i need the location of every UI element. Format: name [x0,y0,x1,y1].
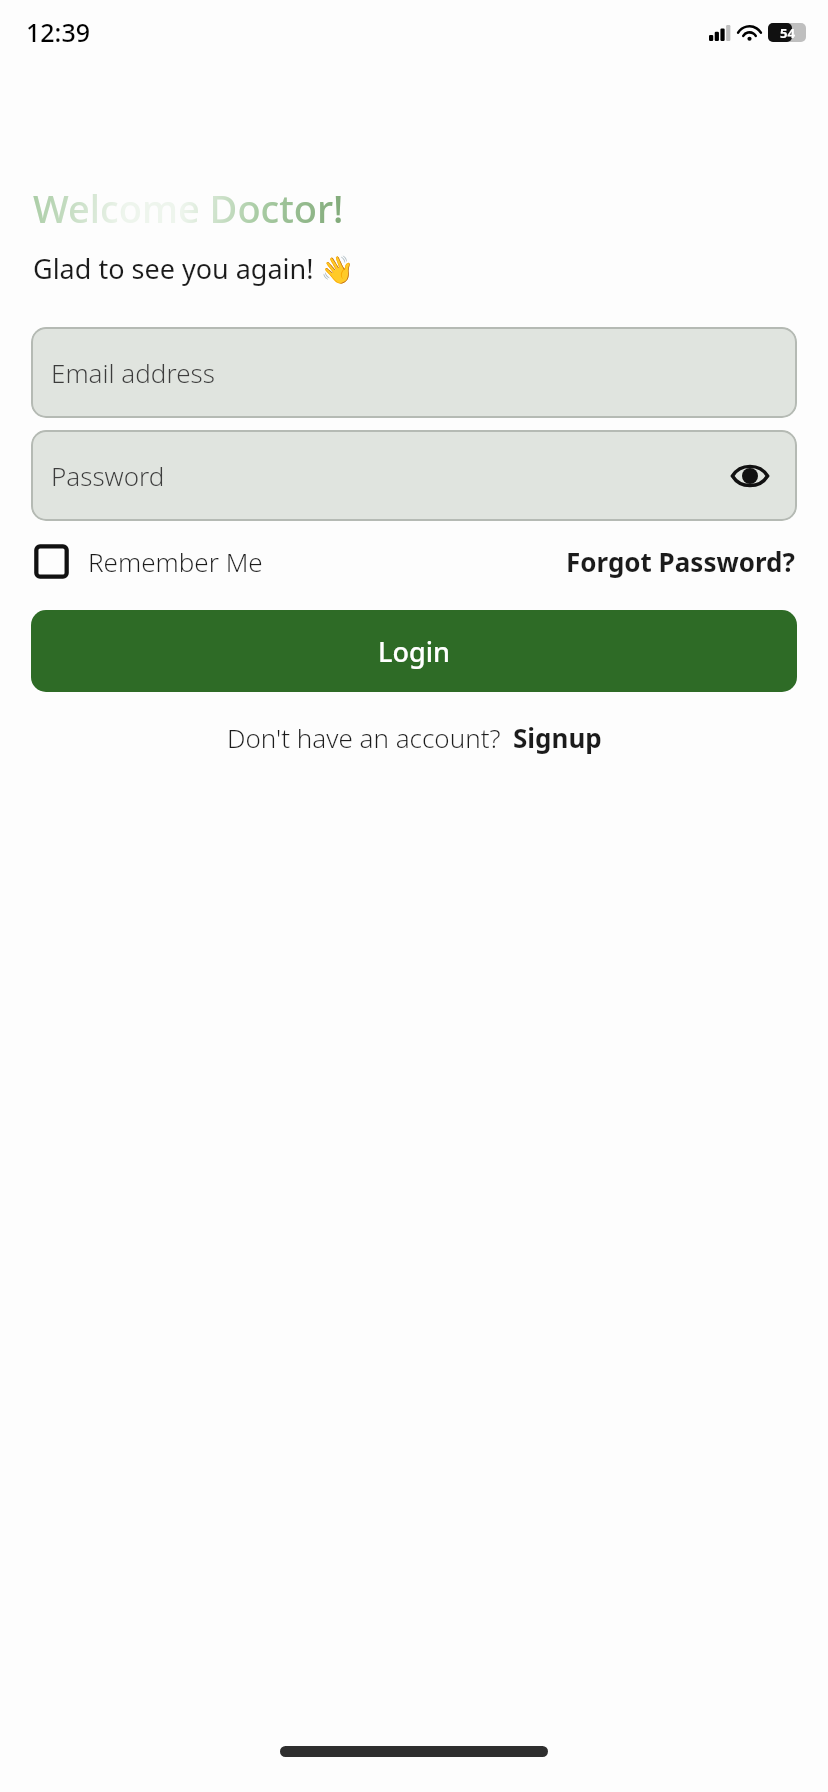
button[interactable]: Login [31,610,797,692]
button[interactable]: Forgot Password? [566,544,795,579]
staticText: Remember Me [88,544,263,579]
button[interactable]: Password [31,430,797,521]
staticText: Login [378,633,450,670]
staticText: Glad to see you again! 👋 [33,250,355,287]
staticText: 54 [780,24,795,42]
button[interactable]: Show password [727,453,773,499]
staticText: Welcome Doctor! [33,182,344,234]
button[interactable]: Email address [31,327,797,418]
staticText: Forgot Password? [566,544,795,579]
staticText: Signup [513,720,602,755]
staticText: Email address [51,355,215,390]
staticText: Don't have an account? [227,720,501,755]
button[interactable]: Signup [513,720,602,755]
button[interactable]: Remember Me [33,543,263,580]
staticText: 12:39 [26,15,91,49]
staticText: Password [51,458,165,493]
